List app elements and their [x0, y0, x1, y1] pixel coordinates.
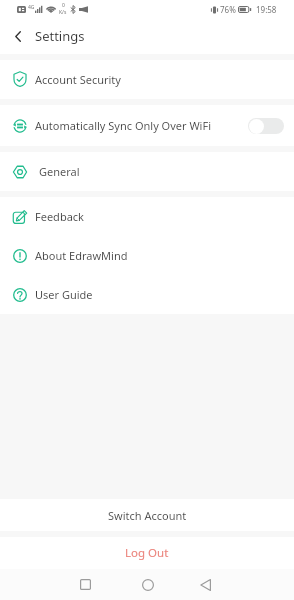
staticText: Account Security: [35, 72, 121, 87]
staticText: Switch Account: [108, 508, 187, 523]
button[interactable]: Automatically Sync Only Over WiFi: [0, 105, 294, 146]
staticText: 4G: [28, 4, 35, 11]
staticText: User Guide: [35, 287, 93, 302]
button[interactable]: Switch Account: [0, 499, 294, 531]
button[interactable]: [248, 118, 284, 134]
staticText: Automatically Sync Only Over WiFi: [35, 118, 211, 133]
staticText: Settings: [35, 27, 85, 45]
button[interactable]: Recents: [69, 569, 102, 600]
staticText: General: [39, 164, 80, 179]
staticText: Log Out: [125, 545, 169, 561]
staticText: 0: [62, 2, 65, 9]
staticText: 76%: [220, 4, 236, 15]
button[interactable]: Feedback: [0, 197, 294, 236]
button[interactable]: Home: [131, 569, 164, 600]
staticText: About EdrawMind: [35, 248, 128, 263]
staticText: K/s: [59, 9, 67, 16]
button[interactable]: Account Security: [0, 60, 294, 99]
staticText: Feedback: [35, 209, 84, 224]
button[interactable]: About EdrawMind: [0, 236, 294, 275]
button[interactable]: Back: [189, 569, 222, 600]
button[interactable]: Log Out: [0, 537, 294, 569]
button[interactable]: General: [0, 152, 294, 191]
button[interactable]: User Guide: [0, 275, 294, 314]
button[interactable]: Back: [4, 22, 32, 50]
staticText: 19:58: [256, 4, 277, 15]
